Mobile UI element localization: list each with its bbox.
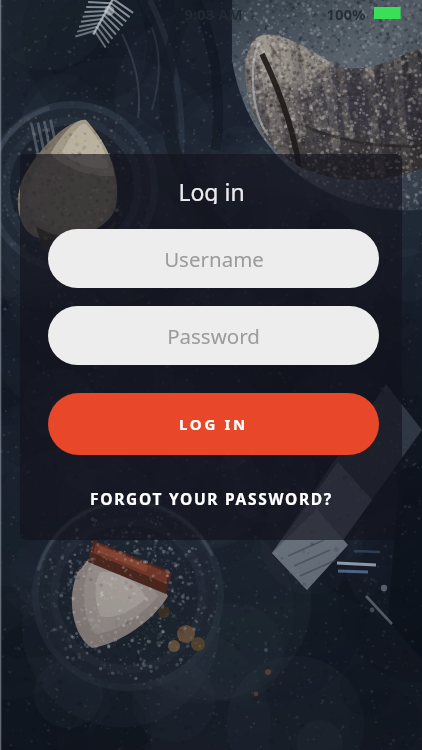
staticText: 100% [326, 4, 366, 24]
button[interactable]: LOG IN [48, 393, 379, 455]
staticText: LOG IN [179, 414, 248, 434]
staticText: Log in [178, 176, 245, 204]
staticText: 9:03 AM [184, 4, 243, 24]
staticText: Password [167, 322, 260, 350]
staticText: Username [164, 245, 264, 273]
button[interactable]: FORGOT YOUR PASSWORD? [80, 485, 342, 511]
button[interactable]: Password [48, 306, 379, 365]
button[interactable]: Username [48, 229, 379, 288]
staticText: FORGOT YOUR PASSWORD? [90, 488, 333, 509]
